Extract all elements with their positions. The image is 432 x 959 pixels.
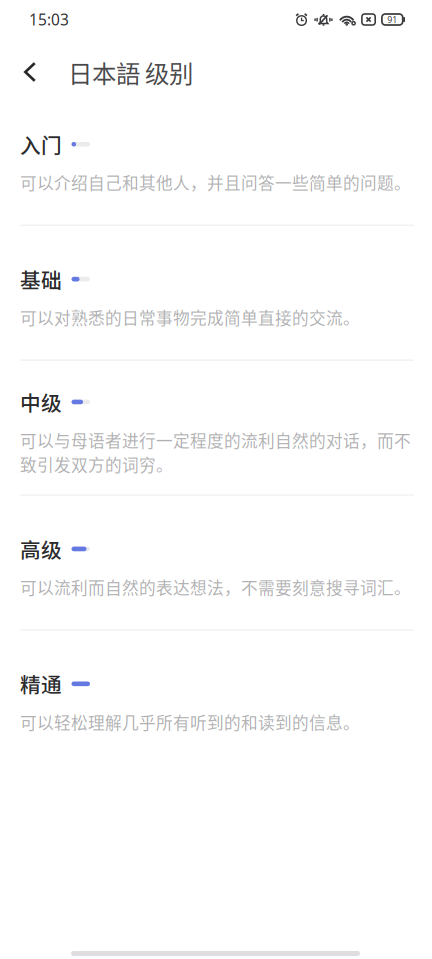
staticText: 可以与母语者进行一定程度的流利自然的对话，而不致引发双方的词穷。: [20, 428, 411, 476]
staticText: 基础: [20, 264, 62, 294]
staticText: 日本語 级别: [68, 54, 193, 90]
staticText: 可以轻松理解几乎所有听到的和读到的信息。: [20, 710, 360, 734]
staticText: 15:03: [29, 9, 69, 30]
staticText: 91: [387, 13, 397, 25]
staticText: 精通: [20, 669, 62, 699]
button[interactable]: 精通: [20, 631, 414, 764]
staticText: 可以介绍自己和其他人，并且问答一些简单的问题。: [20, 170, 411, 194]
staticText: 入门: [20, 129, 62, 159]
button[interactable]: 高级: [20, 496, 414, 629]
staticText: 中级: [20, 387, 62, 417]
button[interactable]: 基础: [20, 226, 414, 359]
button[interactable]: Back: [14, 50, 46, 94]
staticText: 高级: [20, 534, 62, 564]
staticText: 可以对熟悉的日常事物完成简单直接的交流。: [20, 305, 360, 329]
staticText: 可以流利而自然的表达想法，不需要刻意搜寻词汇。: [20, 575, 411, 599]
button[interactable]: 入门: [20, 91, 414, 225]
button[interactable]: 中级: [20, 361, 414, 494]
